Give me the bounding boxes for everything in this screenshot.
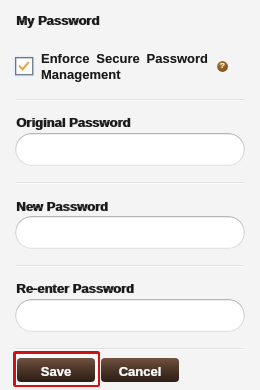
button[interactable]: Enforce Secure Password Management — [13, 55, 35, 77]
staticText: Save — [17, 364, 95, 379]
button[interactable]: Enforce Secure Password Management — [41, 51, 208, 82]
staticText: My Password — [16, 13, 100, 28]
staticText: Original Password — [16, 115, 131, 130]
staticText: New Password — [16, 199, 108, 214]
button[interactable]: New Password — [15, 216, 245, 249]
button[interactable]: Save — [17, 358, 95, 382]
button[interactable]: Re-enter Password — [15, 299, 245, 332]
staticText: Re-enter Password — [16, 281, 134, 296]
button[interactable]: Original Password — [15, 133, 245, 166]
button[interactable]: Help — [217, 61, 228, 72]
staticText: ? — [217, 61, 228, 70]
button[interactable]: Cancel — [101, 358, 179, 382]
staticText: Cancel — [101, 364, 179, 379]
